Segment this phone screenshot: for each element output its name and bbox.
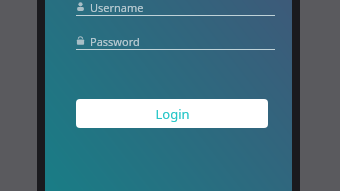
button[interactable]: Login (76, 99, 268, 128)
button[interactable]: Password (76, 34, 275, 50)
staticText: Login (155, 105, 190, 123)
button[interactable]: Username (76, 0, 275, 16)
staticText: Username (90, 0, 144, 15)
staticText: Password (90, 34, 140, 49)
